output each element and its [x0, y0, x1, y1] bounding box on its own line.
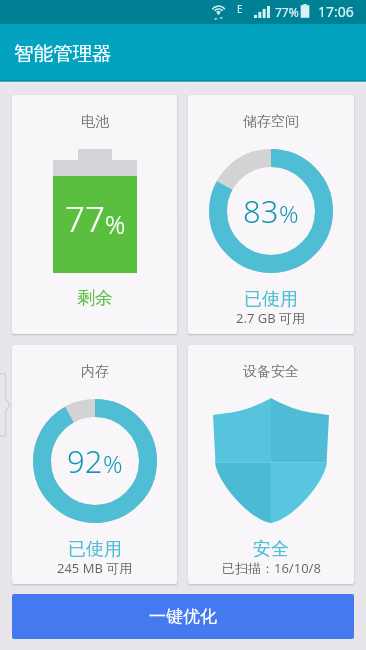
staticText: 245 MB 可用 [57, 559, 133, 577]
other: Panel handle [0, 374, 10, 436]
staticText: 已扫描：16/10/8 [222, 559, 321, 577]
staticText: 17:06 [318, 2, 354, 21]
staticText: 77% [275, 4, 299, 20]
staticText: 已使用 [68, 538, 122, 561]
staticText: 安全 [253, 538, 289, 561]
staticText: E [237, 2, 243, 16]
staticText: 一键优化 [149, 606, 217, 627]
staticText: 智能管理器 [14, 41, 112, 66]
staticText: 储存空间 [243, 113, 299, 131]
staticText: % [103, 447, 123, 480]
staticText: 83 [243, 190, 279, 232]
staticText: 剩余 [77, 287, 113, 310]
button[interactable]: 设备安全 [188, 345, 354, 584]
staticText: % [279, 197, 299, 230]
button[interactable]: 一键优化 [12, 594, 354, 639]
staticText: % [105, 207, 126, 241]
staticText: 设备安全 [243, 363, 299, 381]
staticText: 电池 [81, 113, 109, 131]
staticText: 内存 [81, 363, 109, 381]
staticText: 77 [65, 195, 105, 243]
button[interactable]: 储存空间 [188, 95, 354, 334]
button[interactable]: 内存 [12, 345, 177, 584]
staticText: 已使用 [244, 288, 298, 311]
button[interactable]: 电池 [12, 95, 177, 334]
staticText: 2.7 GB 可用 [236, 309, 306, 327]
staticText: 92 [67, 440, 103, 482]
